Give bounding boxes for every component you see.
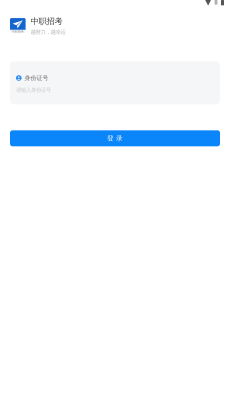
staticText: 越努力，越幸运: [31, 28, 66, 35]
staticText: 身份证号: [25, 74, 49, 82]
button[interactable]: 登 录: [10, 130, 220, 146]
staticText: 请输入身份证号: [16, 87, 51, 93]
staticText: 登 录: [107, 134, 123, 142]
button[interactable]: 身份证号: [10, 61, 220, 104]
staticText: 中职招考: [31, 16, 63, 26]
staticText: 中职招考: [12, 30, 24, 33]
